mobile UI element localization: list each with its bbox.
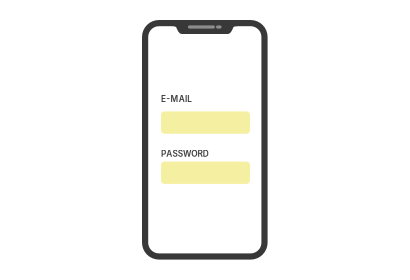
staticText: PASSWORD	[161, 149, 209, 159]
button[interactable]: E-MAIL	[161, 94, 250, 134]
staticText: E-MAIL	[161, 94, 192, 104]
button[interactable]: PASSWORD	[161, 149, 250, 184]
